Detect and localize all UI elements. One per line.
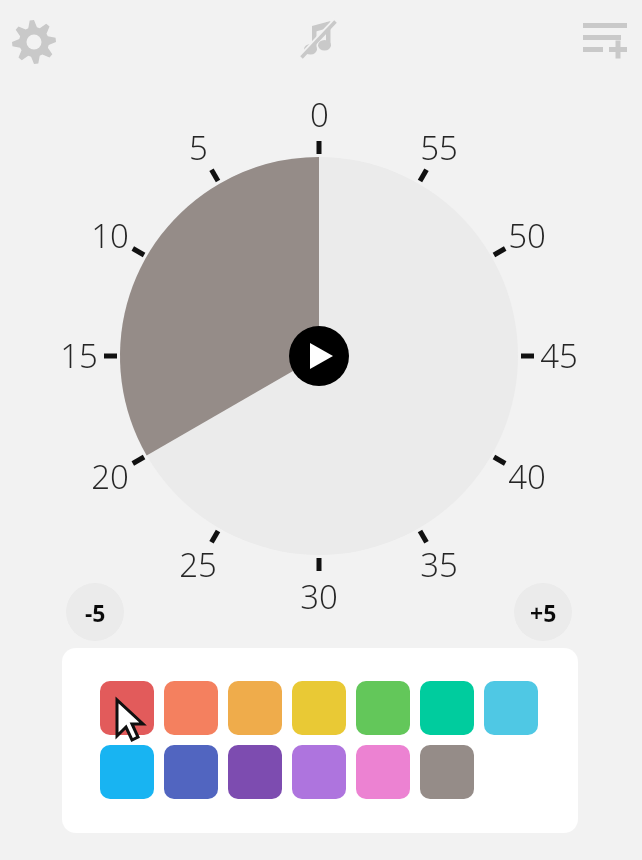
- button[interactable]: +5: [514, 583, 572, 641]
- staticText: 15: [60, 333, 98, 377]
- button[interactable]: Colour swatch: [356, 745, 410, 799]
- button[interactable]: Add to playlist: [581, 16, 629, 64]
- button[interactable]: Colour swatch: [484, 681, 538, 735]
- button[interactable]: Colour swatch: [420, 745, 474, 799]
- button[interactable]: Music off: [295, 16, 343, 64]
- staticText: +5: [530, 597, 557, 628]
- staticText: 30: [300, 574, 338, 618]
- button[interactable]: Colour swatch: [100, 745, 154, 799]
- staticText: 45: [540, 333, 578, 377]
- staticText: -5: [85, 597, 106, 628]
- button[interactable]: Colour swatch: [100, 681, 154, 735]
- staticText: 55: [420, 125, 458, 169]
- button[interactable]: Colour swatch: [228, 681, 282, 735]
- button[interactable]: Colour swatch: [420, 681, 474, 735]
- button[interactable]: Colour swatch: [292, 745, 346, 799]
- staticText: 10: [91, 213, 129, 257]
- button[interactable]: Colour swatch: [356, 681, 410, 735]
- staticText: 0: [310, 92, 329, 136]
- staticText: 35: [420, 542, 458, 586]
- staticText: 5: [189, 125, 208, 169]
- staticText: 50: [508, 213, 546, 257]
- staticText: 40: [508, 454, 546, 498]
- button[interactable]: Colour swatch: [164, 745, 218, 799]
- staticText: 25: [179, 542, 217, 586]
- button[interactable]: -5: [66, 583, 124, 641]
- button[interactable]: Settings: [10, 18, 58, 66]
- staticText: 20: [91, 454, 129, 498]
- button[interactable]: Colour swatch: [292, 681, 346, 735]
- button[interactable]: Colour swatch: [164, 681, 218, 735]
- button[interactable]: Colour swatch: [228, 745, 282, 799]
